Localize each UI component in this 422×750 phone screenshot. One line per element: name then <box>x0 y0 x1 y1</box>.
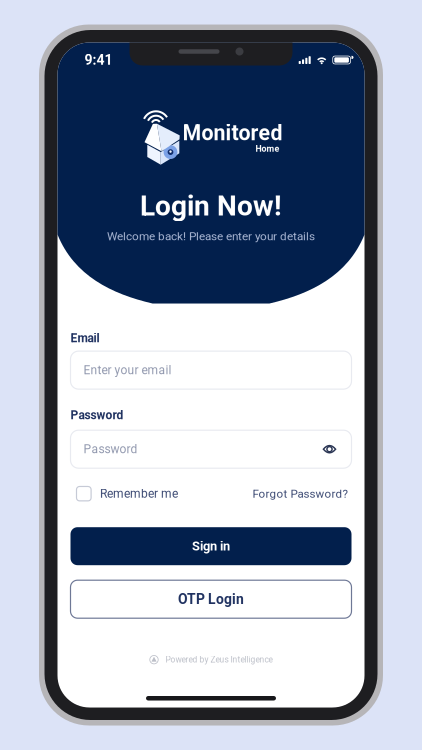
staticText: Monitored <box>182 120 282 145</box>
staticText: Sign in <box>192 539 230 554</box>
button[interactable]: OTP Login <box>70 580 351 618</box>
staticText: Home <box>255 143 279 154</box>
staticText: Email <box>70 331 99 345</box>
staticText: Enter your email <box>83 363 171 377</box>
staticText: Forgot Password? <box>252 487 347 500</box>
button[interactable]: Forgot Password? <box>252 487 347 500</box>
staticText: Password <box>70 408 123 422</box>
staticText: 9:41 <box>84 52 112 68</box>
staticText: Login Now! <box>140 189 282 222</box>
button[interactable]: Remember me <box>76 486 178 501</box>
button[interactable]: Show password <box>322 443 336 455</box>
staticText: Password <box>83 442 137 456</box>
staticText: Powered by Zeus Intelligence <box>166 655 273 665</box>
staticText: Welcome back! Please enter your details <box>107 229 315 243</box>
staticText: OTP Login <box>178 591 244 607</box>
button[interactable]: Sign in <box>70 527 351 565</box>
staticText: Remember me <box>100 487 178 501</box>
